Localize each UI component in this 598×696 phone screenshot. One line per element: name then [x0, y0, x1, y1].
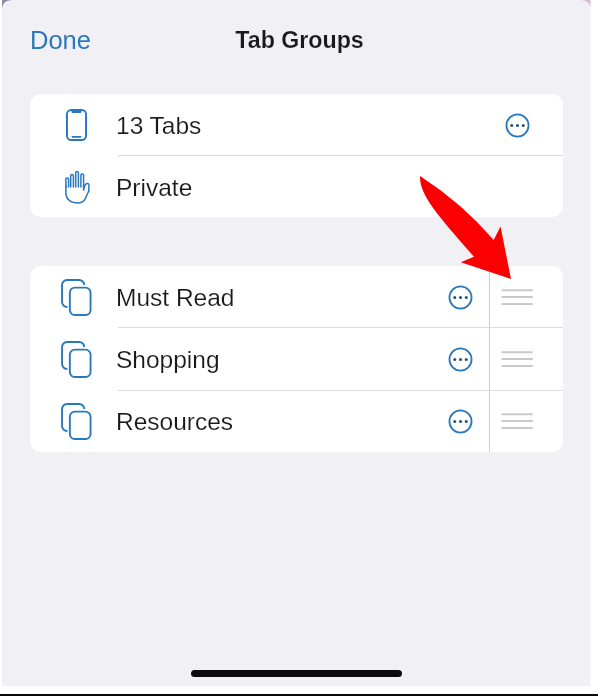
staticText: 13 Tabs: [116, 112, 202, 139]
button[interactable]: 13 Tabs: [30, 94, 563, 156]
button[interactable]: Reorder: [489, 390, 563, 452]
button[interactable]: Shopping: [30, 328, 563, 390]
staticText: Shopping: [116, 346, 220, 373]
staticText: Must Read: [116, 284, 235, 311]
staticText: Resources: [116, 408, 234, 435]
button[interactable]: More options: [448, 347, 473, 372]
staticText: Private: [116, 174, 193, 201]
button[interactable]: More options: [448, 409, 473, 434]
staticText: Tab Groups: [235, 27, 364, 53]
button[interactable]: Private: [30, 156, 563, 217]
button[interactable]: Done: [18, 0, 103, 79]
staticText: Done: [30, 26, 91, 54]
button[interactable]: More options: [505, 113, 530, 138]
button[interactable]: More options: [448, 285, 473, 310]
button[interactable]: Reorder: [489, 266, 563, 328]
button[interactable]: Reorder: [489, 328, 563, 390]
button[interactable]: Resources: [30, 390, 563, 452]
button[interactable]: Must Read: [30, 266, 563, 328]
